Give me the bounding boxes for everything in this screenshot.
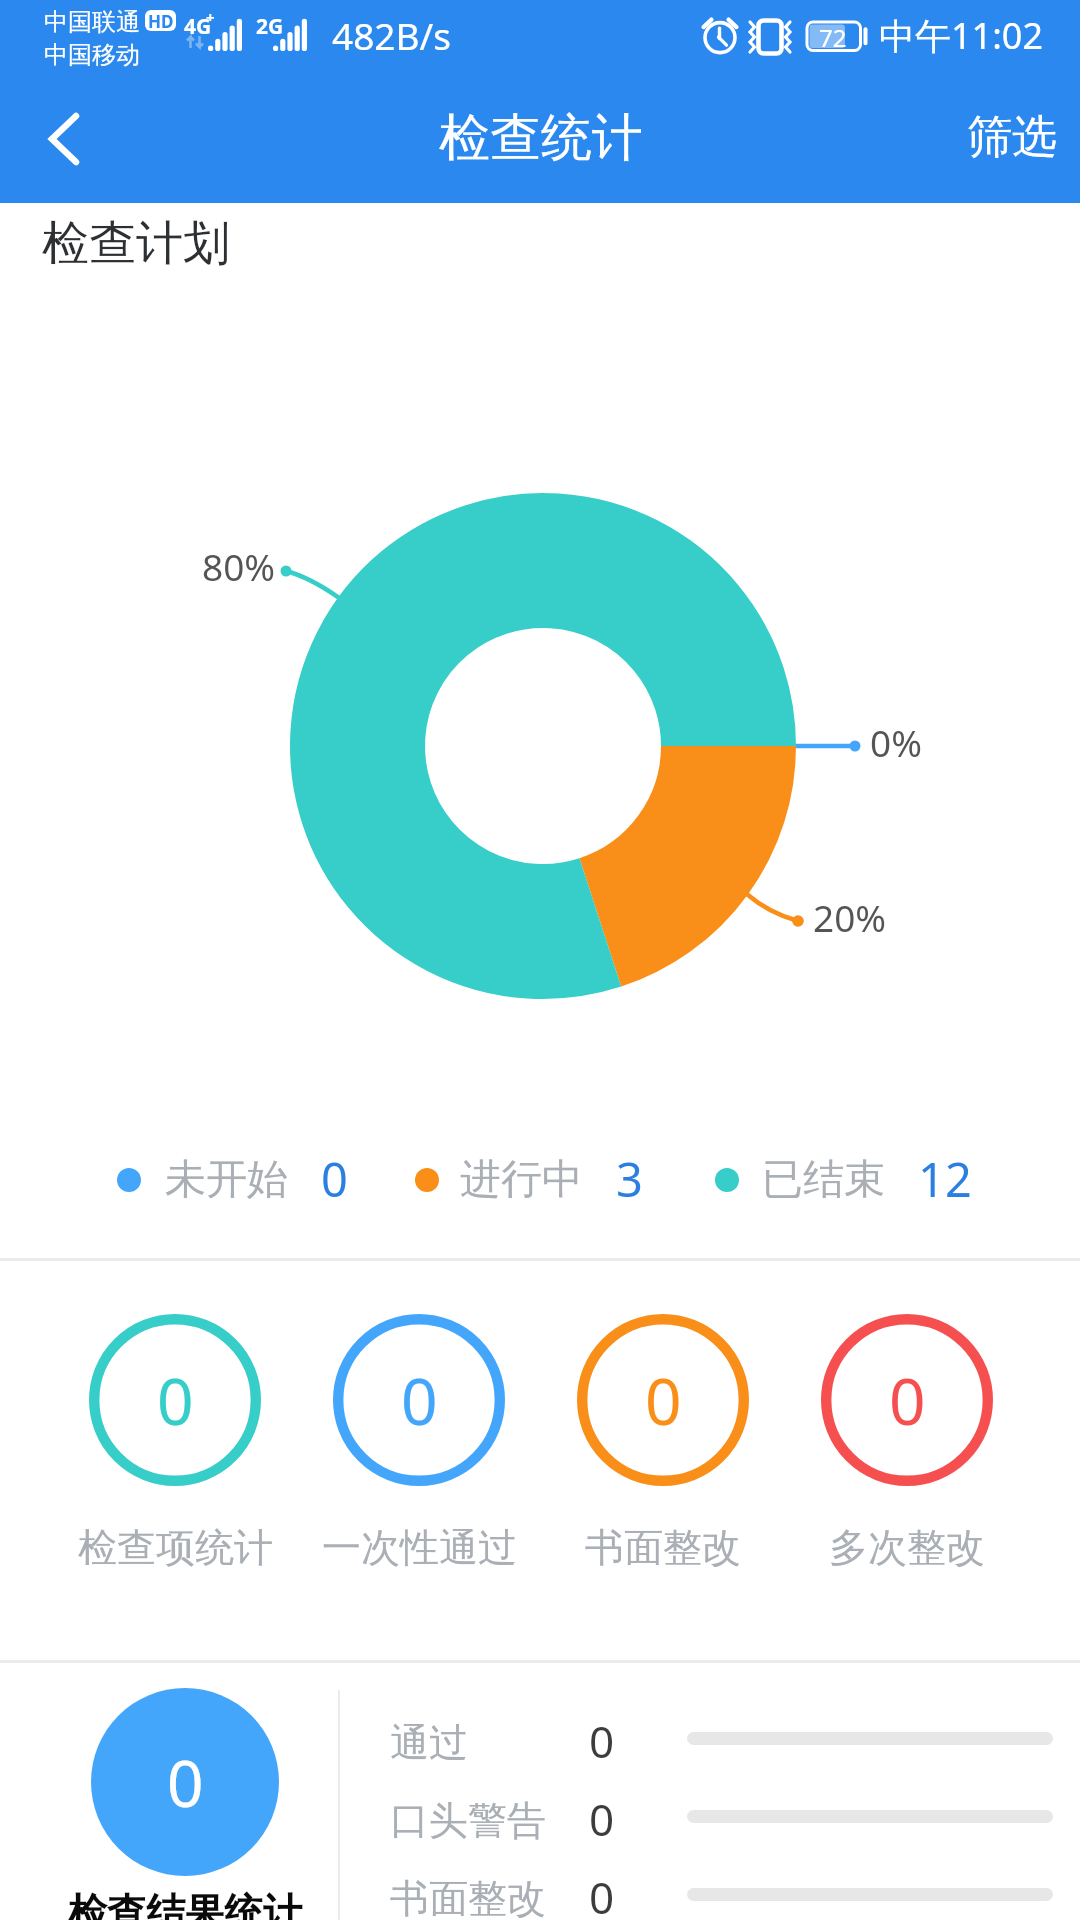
- staticText: 0: [645, 1357, 682, 1444]
- staticText: 0: [321, 1147, 348, 1203]
- staticText: 20%: [813, 892, 887, 942]
- button[interactable]: 口头警告: [340, 1784, 1080, 1854]
- staticText: 482B/s: [332, 10, 452, 60]
- staticText: 2G: [256, 12, 284, 41]
- button[interactable]: 未开始: [117, 1152, 348, 1208]
- staticText: 0: [167, 1739, 204, 1826]
- staticText: 0: [589, 1867, 615, 1920]
- staticText: 12: [918, 1147, 972, 1203]
- staticText: 口头警告: [390, 1796, 546, 1845]
- button[interactable]: 通过: [340, 1706, 1080, 1776]
- button[interactable]: 0: [309, 1314, 529, 1584]
- staticText: 一次性通过: [322, 1523, 517, 1572]
- staticText: 0: [589, 1711, 615, 1771]
- button[interactable]: 书面整改: [340, 1862, 1080, 1920]
- button[interactable]: 0: [553, 1314, 773, 1584]
- staticText: 0: [401, 1357, 438, 1444]
- staticText: 多次整改: [829, 1523, 985, 1572]
- staticText: 书面整改: [585, 1523, 741, 1572]
- staticText: 0: [889, 1357, 926, 1444]
- staticText: 检查项统计: [78, 1523, 273, 1572]
- staticText: 检查计划: [42, 214, 230, 273]
- staticText: 3: [616, 1147, 643, 1203]
- staticText: 筛选: [967, 109, 1057, 166]
- staticText: 4G: [184, 12, 212, 41]
- staticText: 0: [157, 1357, 194, 1444]
- button[interactable]: 0: [65, 1314, 285, 1584]
- staticText: 0%: [870, 717, 922, 767]
- staticText: 中午11:02: [879, 11, 1044, 60]
- staticText: 进行中: [460, 1154, 583, 1206]
- button[interactable]: 进行中: [415, 1152, 643, 1208]
- button[interactable]: 已结束: [715, 1152, 972, 1208]
- button[interactable]: Back: [4, 75, 124, 203]
- staticText: 中国联通: [44, 7, 140, 37]
- staticText: 中国移动: [44, 40, 140, 70]
- staticText: 检查统计: [439, 106, 643, 170]
- staticText: 80%: [202, 541, 276, 591]
- staticText: +: [206, 7, 215, 27]
- button[interactable]: 0: [0, 1663, 338, 1920]
- button[interactable]: 0: [797, 1314, 1017, 1584]
- staticText: HD: [148, 10, 174, 31]
- staticText: 检查结果统计: [68, 1888, 302, 1920]
- staticText: 72: [819, 21, 847, 50]
- staticText: 0: [589, 1789, 615, 1849]
- button[interactable]: 筛选: [948, 73, 1080, 201]
- staticText: 书面整改: [390, 1874, 546, 1920]
- staticText: 未开始: [165, 1154, 288, 1206]
- staticText: 通过: [390, 1718, 468, 1767]
- staticText: 已结束: [762, 1154, 885, 1206]
